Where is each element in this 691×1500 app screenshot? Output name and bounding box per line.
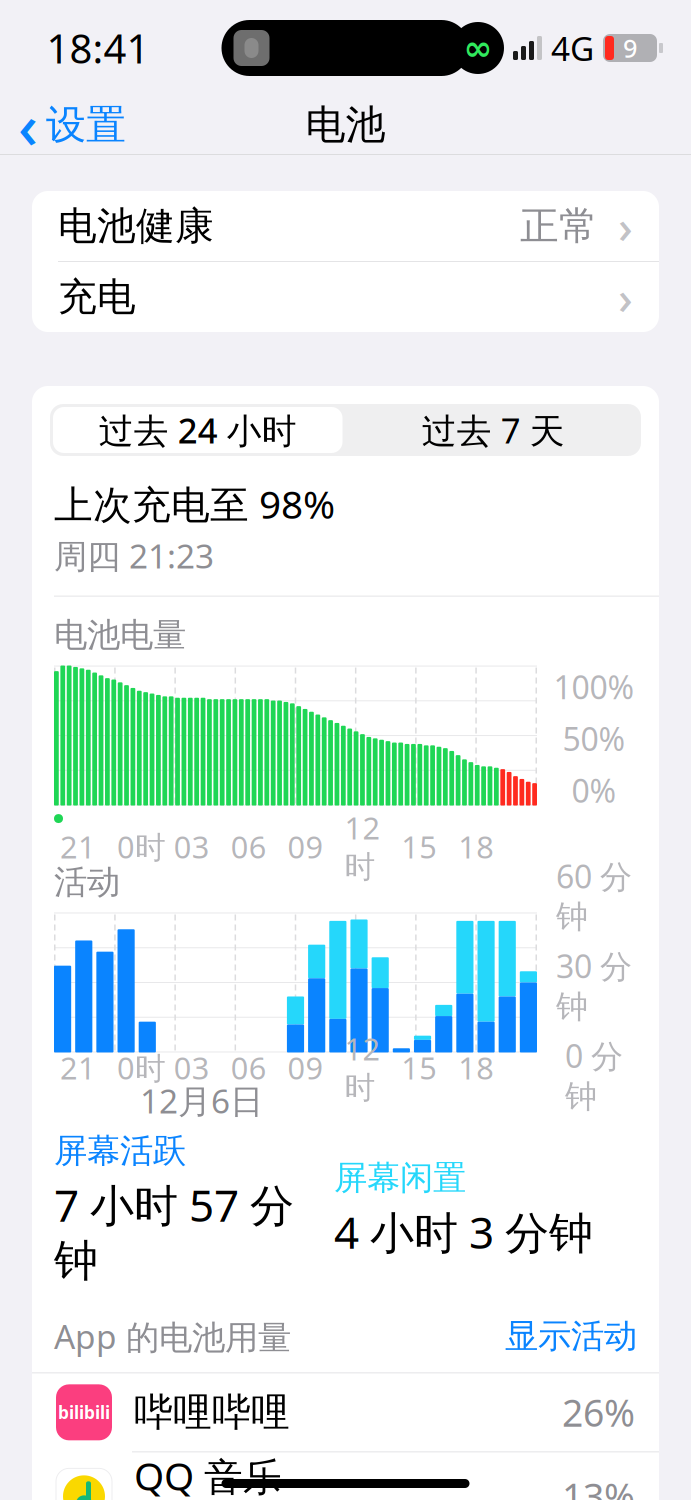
staticText: 18 <box>458 1047 494 1088</box>
staticText: 屏幕活跃 <box>54 1130 186 1171</box>
staticText: 03 <box>174 1047 210 1088</box>
staticText: 0 分钟 <box>565 1034 623 1116</box>
staticText: 09 <box>287 826 323 867</box>
staticText: 周四 21:23 <box>54 533 214 578</box>
staticText: 充电 <box>58 273 136 321</box>
button[interactable]: 显示活动 <box>505 1316 637 1357</box>
button[interactable]: bilibili <box>32 1373 659 1451</box>
button[interactable]: QQ 音乐 <box>32 1452 659 1500</box>
staticText: 电池电量 <box>54 615 186 655</box>
staticText: 06 <box>231 826 267 867</box>
staticText: ‹ <box>18 84 38 166</box>
staticText: 60 分钟 <box>556 855 632 937</box>
staticText: bilibili <box>58 1401 110 1424</box>
staticText: 正常 <box>520 202 598 250</box>
staticText: 电池健康 <box>58 202 214 250</box>
staticText: 18 <box>458 826 494 867</box>
staticText: 06 <box>231 1047 267 1088</box>
staticText: 12时 <box>344 1028 380 1107</box>
staticText: › <box>618 267 633 327</box>
staticText: 15 <box>401 1047 437 1088</box>
staticText: 显示活动 <box>505 1316 637 1357</box>
staticText: QQ 音乐 <box>134 1450 282 1500</box>
staticText: 4G <box>551 26 594 70</box>
staticText: 电池 <box>305 100 385 149</box>
staticText: 12时 <box>344 807 380 886</box>
button[interactable]: 充电 <box>32 262 659 332</box>
staticText: 4 小时 3 分钟 <box>334 1202 593 1261</box>
staticText: 09 <box>287 1047 323 1088</box>
staticText: 设置 <box>46 100 126 149</box>
staticText: 13% <box>562 1472 635 1500</box>
staticText: 21 <box>60 826 96 867</box>
staticText: 15 <box>401 826 437 867</box>
button[interactable]: ‹ <box>0 78 126 172</box>
staticText: 30 分钟 <box>556 945 632 1026</box>
staticText: ∞ <box>463 28 492 68</box>
staticText: 7 小时 57 分钟 <box>54 1175 294 1288</box>
button[interactable]: 电池健康 <box>32 191 659 261</box>
staticText: 9 <box>623 31 637 65</box>
staticText: 过去 24 小时 <box>99 407 297 453</box>
staticText: 屏幕闲置 <box>334 1157 466 1198</box>
staticText: 活动 <box>54 862 120 902</box>
staticText: 0时 <box>117 826 166 867</box>
staticText: 过去 7 天 <box>422 407 565 453</box>
staticText: 03 <box>174 826 210 867</box>
staticText: 上次充电至 98% <box>54 478 335 529</box>
button[interactable]: 过去 7 天 <box>345 404 641 456</box>
staticText: 哔哩哔哩 <box>134 1389 290 1436</box>
button[interactable]: 过去 24 小时 <box>50 404 345 456</box>
staticText: 50% <box>562 717 625 760</box>
staticText: 12月6日 <box>140 1078 263 1123</box>
staticText: 21 <box>60 1047 96 1088</box>
staticText: 100% <box>553 666 634 708</box>
staticText: 18:41 <box>46 21 149 74</box>
staticText: App 的电池用量 <box>54 1314 291 1358</box>
staticText: 0时 <box>117 1047 166 1088</box>
staticText: 26% <box>562 1388 635 1437</box>
staticText: 0% <box>571 769 616 812</box>
staticText: › <box>618 196 633 256</box>
